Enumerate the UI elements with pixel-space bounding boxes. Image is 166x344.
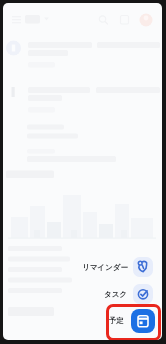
button[interactable] [133,284,153,304]
button[interactable] [106,304,161,340]
button[interactable] [131,309,155,333]
button[interactable] [133,257,153,277]
staticText: 予定 [109,316,124,325]
button[interactable]: リマインダー [61,260,128,274]
button[interactable]: タスク [61,287,128,301]
staticText: タスク [104,290,128,299]
staticText: リマインダー [82,263,128,272]
